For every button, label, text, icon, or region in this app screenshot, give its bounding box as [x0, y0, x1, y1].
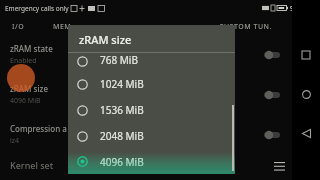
button[interactable]: 4096 MiB [68, 149, 235, 174]
button[interactable]: MEM [53, 22, 72, 32]
button[interactable]: 1536 MiB [68, 97, 235, 123]
staticText: Compression a [10, 123, 67, 134]
button[interactable]: 1024 MiB [68, 71, 235, 97]
staticText: 2048 MiB [100, 129, 144, 143]
staticText: Kernel set [10, 159, 54, 171]
button[interactable]: 768 MiB [68, 53, 235, 71]
button[interactable]: Back [292, 119, 320, 147]
button[interactable]: Toggle [262, 49, 282, 61]
button[interactable]: CUSTOM TUN. [219, 22, 272, 32]
button[interactable]: Toggle [262, 89, 282, 101]
staticText: 4096 MiB [100, 155, 144, 169]
staticText: zRAM state [10, 43, 53, 54]
button[interactable]: 2048 MiB [68, 123, 235, 149]
staticText: 1024 MiB [100, 77, 144, 91]
button[interactable]: Toggle [262, 129, 282, 141]
button[interactable]: Menu [268, 155, 290, 177]
button[interactable]: I/O [12, 22, 25, 32]
staticText: lz4 [10, 136, 20, 146]
staticText: zRAM size [79, 32, 132, 47]
staticText: 1536 MiB [100, 103, 144, 117]
staticText: 9:36 AM [290, 4, 315, 13]
staticText: 4096 MiB [10, 96, 41, 106]
staticText: zRAM size [10, 83, 48, 94]
staticText: 768 MiB [100, 53, 138, 67]
staticText: Emergency calls only [5, 4, 69, 13]
button[interactable]: Home [292, 80, 320, 108]
staticText: Enabled [10, 56, 37, 66]
button[interactable]: Recents [292, 41, 320, 69]
